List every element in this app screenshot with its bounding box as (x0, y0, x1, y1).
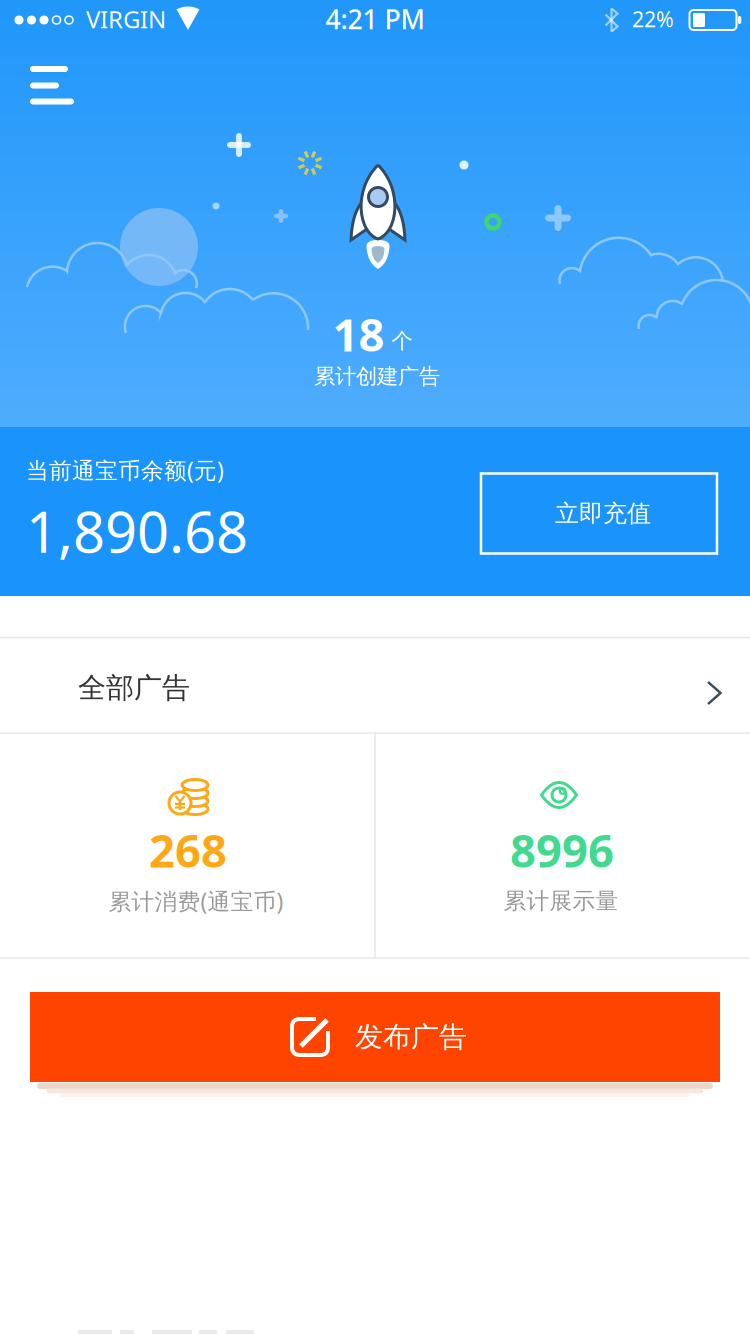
button[interactable]: 8996 (0, 0, 374, 224)
staticText: 18 (332, 304, 384, 364)
button[interactable]: 268 (0, 0, 374, 224)
staticText: 个 (391, 328, 412, 354)
staticText: 22% (632, 5, 674, 33)
staticText: 4:21 PM (325, 1, 424, 37)
button[interactable]: 立即充值 (481, 473, 717, 553)
staticText: 当前通宝币余额(元) (26, 455, 224, 485)
staticText: 累计展示量 (503, 887, 618, 915)
staticText: 268 (149, 820, 227, 880)
button[interactable] (0, 0, 750, 1334)
staticText: 发布广告 (355, 1020, 467, 1054)
staticText: 累计消费(通宝币) (108, 886, 283, 916)
staticText: 立即充值 (555, 499, 651, 528)
staticText: 1,890.68 (26, 494, 248, 568)
button[interactable]: 全部广告 (0, 641, 750, 735)
staticText: 累计创建广告 (314, 363, 440, 390)
staticText: 8996 (510, 820, 614, 880)
staticText: 全部广告 (78, 671, 190, 705)
staticText: VIRGIN (86, 3, 166, 35)
button[interactable]: 发布广告 (30, 992, 720, 1082)
